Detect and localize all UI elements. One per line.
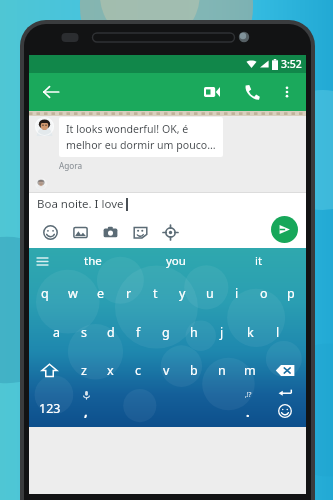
- button[interactable]: w: [59, 274, 87, 313]
- button[interactable]: Insert emoji: [35, 218, 65, 246]
- button[interactable]: m: [236, 351, 264, 389]
- button[interactable]: Back: [35, 76, 67, 108]
- staticText: u: [206, 285, 214, 302]
- staticText: b: [190, 362, 198, 379]
- staticText: n: [218, 362, 226, 379]
- button[interactable]: Comma, voice input: [71, 389, 101, 427]
- button[interactable]: Insert image: [65, 218, 95, 246]
- staticText: you: [166, 253, 186, 269]
- button[interactable]: p: [277, 274, 304, 313]
- staticText: x: [107, 362, 114, 379]
- staticText: i: [235, 285, 239, 302]
- button[interactable]: Video call: [196, 76, 228, 108]
- staticText: q: [41, 285, 49, 302]
- button[interactable]: Period: [233, 389, 263, 427]
- staticText: v: [163, 362, 170, 379]
- staticText: l: [276, 324, 280, 341]
- staticText: Boa noite. I love: [37, 196, 124, 212]
- button[interactable]: Keyboard settings: [32, 251, 52, 271]
- button[interactable]: s: [70, 313, 97, 351]
- button[interactable]: Share location: [155, 218, 185, 246]
- button[interactable]: z: [70, 351, 97, 389]
- button[interactable]: Send: [271, 216, 298, 243]
- staticText: s: [81, 324, 87, 341]
- staticText: ,!?: [245, 390, 252, 399]
- staticText: o: [260, 285, 268, 302]
- staticText: m: [244, 362, 256, 379]
- button[interactable]: the: [51, 248, 134, 274]
- button[interactable]: you: [134, 248, 217, 274]
- staticText: h: [190, 324, 198, 341]
- button[interactable]: it: [217, 248, 300, 274]
- button[interactable]: j: [208, 313, 236, 351]
- staticText: .: [246, 403, 250, 421]
- button[interactable]: o: [250, 274, 277, 313]
- button[interactable]: b: [180, 351, 208, 389]
- staticText: melhor eu dormir um pouco…: [66, 138, 216, 152]
- button[interactable]: 123: [29, 389, 71, 427]
- staticText: r: [126, 285, 132, 302]
- button[interactable]: t: [142, 274, 169, 313]
- button[interactable]: y: [169, 274, 196, 313]
- staticText: z: [81, 362, 87, 379]
- button[interactable]: x: [97, 351, 124, 389]
- button[interactable]: It looks wonderful! OK, é: [59, 117, 223, 157]
- button[interactable]: Shift: [29, 351, 70, 389]
- staticText: e: [97, 285, 105, 302]
- button[interactable]: Emoji and enter: [263, 389, 306, 427]
- button[interactable]: v: [152, 351, 180, 389]
- button[interactable]: a: [43, 313, 70, 351]
- staticText: 3:52: [281, 57, 302, 71]
- staticText: f: [136, 324, 141, 341]
- staticText: ,: [84, 402, 88, 420]
- button[interactable]: Insert sticker: [125, 218, 155, 246]
- button[interactable]: u: [196, 274, 223, 313]
- button[interactable]: k: [236, 313, 264, 351]
- staticText: k: [247, 324, 254, 341]
- button[interactable]: e: [87, 274, 115, 313]
- button[interactable]: Call: [236, 76, 268, 108]
- staticText: j: [220, 324, 224, 341]
- button[interactable]: f: [124, 313, 152, 351]
- staticText: the: [84, 253, 102, 269]
- staticText: w: [68, 285, 78, 302]
- button[interactable]: Take photo: [95, 218, 125, 246]
- staticText: y: [179, 285, 186, 302]
- staticText: g: [162, 324, 170, 341]
- button[interactable]: h: [180, 313, 208, 351]
- button[interactable]: q: [31, 274, 59, 313]
- button[interactable]: r: [115, 274, 142, 313]
- button[interactable]: c: [124, 351, 152, 389]
- button[interactable]: g: [152, 313, 180, 351]
- staticText: p: [287, 285, 295, 302]
- staticText: t: [153, 285, 158, 302]
- button[interactable]: More options: [272, 77, 302, 107]
- staticText: it: [255, 253, 263, 269]
- staticText: Agora: [59, 160, 83, 171]
- button[interactable]: l: [264, 313, 292, 351]
- staticText: a: [53, 324, 61, 341]
- button[interactable]: i: [223, 274, 250, 313]
- staticText: 123: [39, 400, 61, 417]
- staticText: It looks wonderful! OK, é: [66, 122, 189, 136]
- staticText: c: [135, 362, 142, 379]
- button[interactable]: Backspace: [264, 351, 306, 389]
- button[interactable]: d: [97, 313, 124, 351]
- staticText: d: [107, 324, 115, 341]
- button[interactable]: n: [208, 351, 236, 389]
- button[interactable]: Space: [101, 389, 233, 427]
